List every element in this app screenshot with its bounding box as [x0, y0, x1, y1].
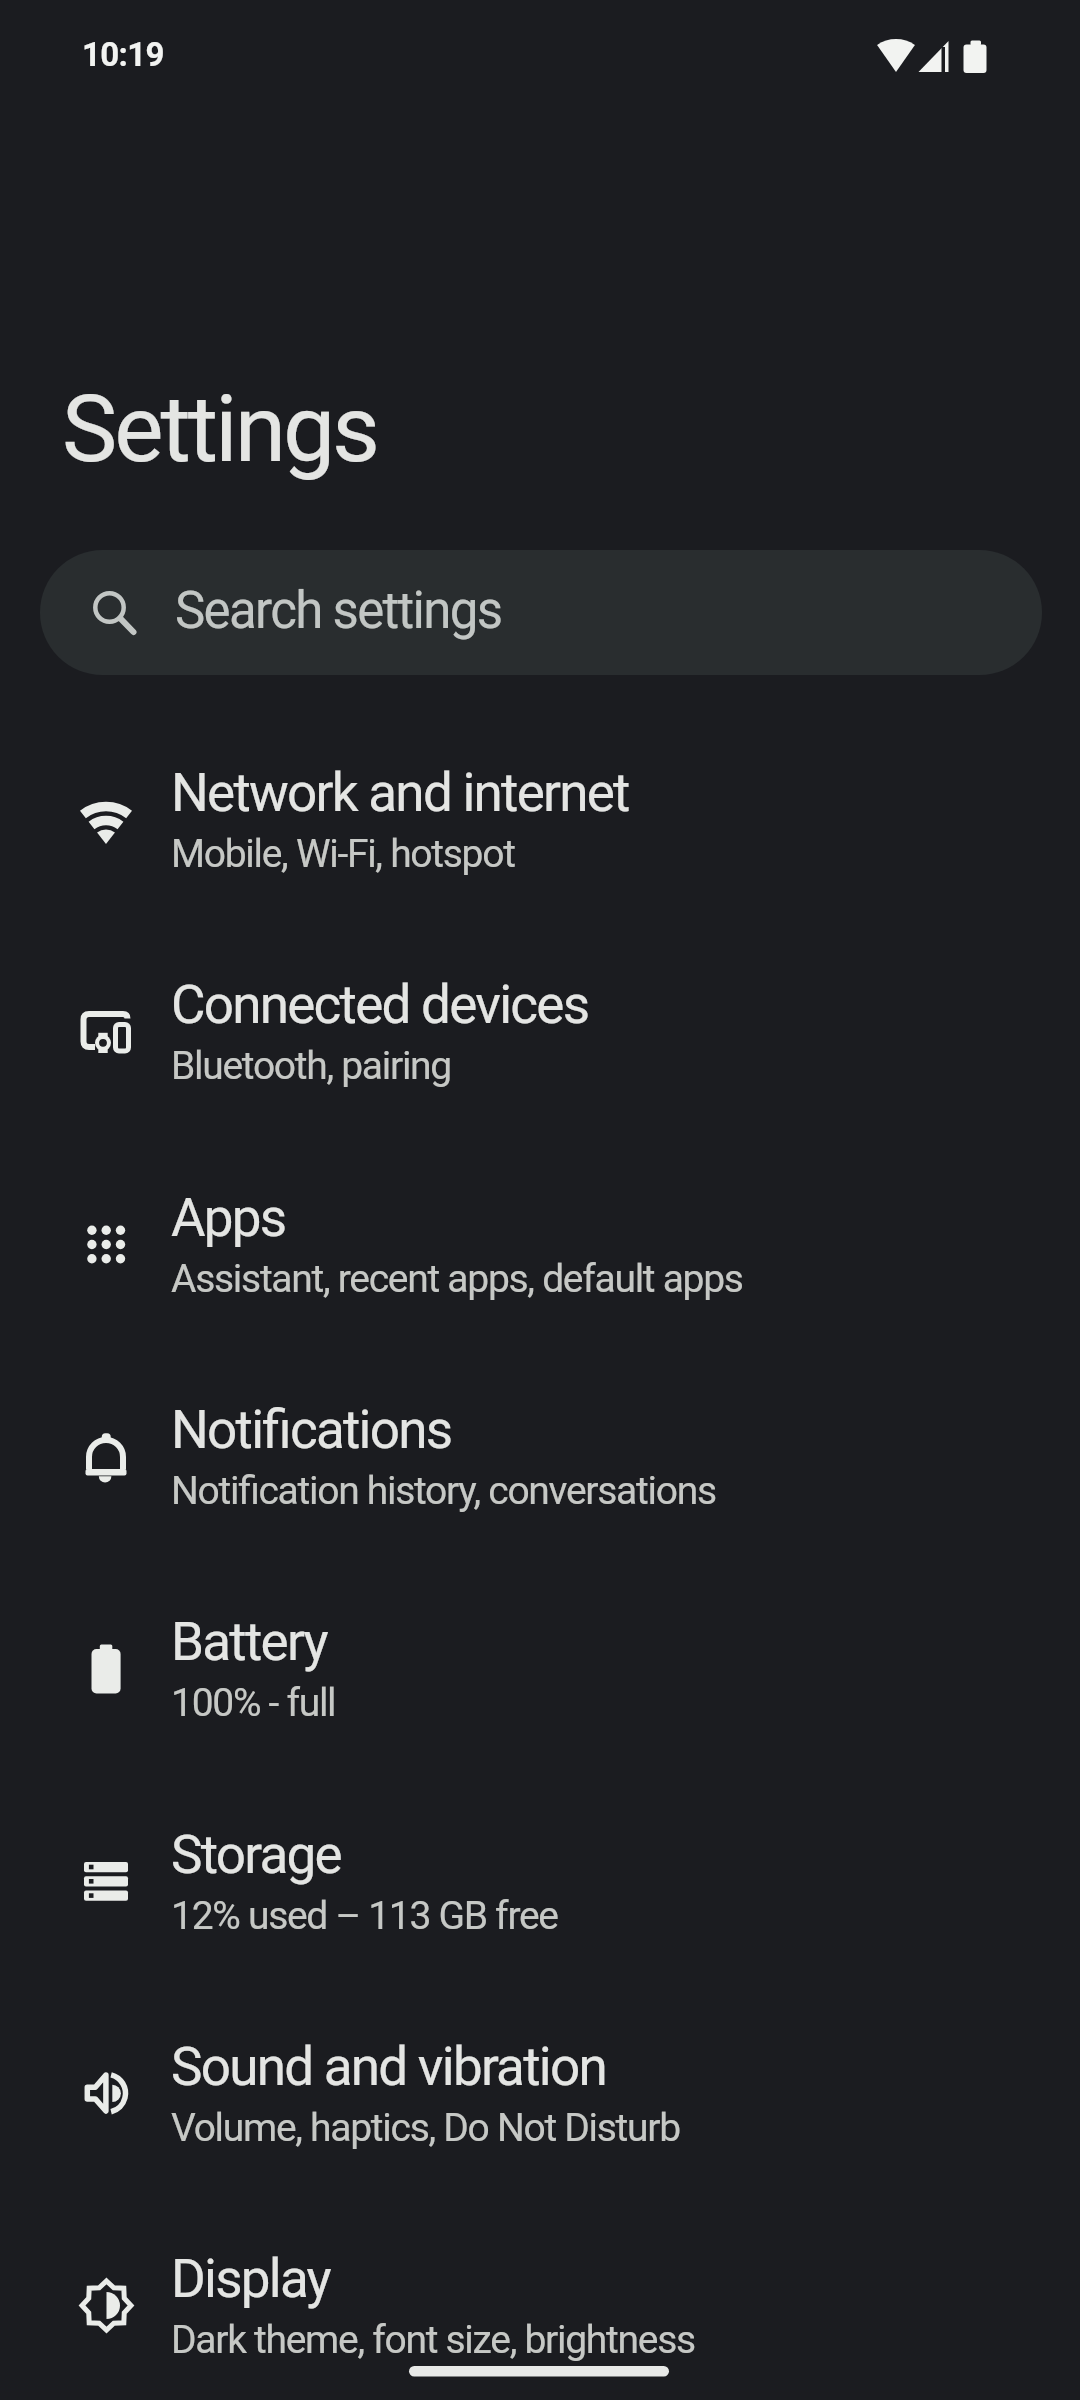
staticText: Network and internet: [171, 762, 629, 824]
staticText: Dark theme, font size, brightness: [171, 2317, 695, 2363]
button[interactable]: Battery: [0, 1563, 1080, 1775]
staticText: Storage: [171, 1824, 341, 1886]
staticText: Sound and vibration: [171, 2036, 606, 2098]
button[interactable]: Notifications: [0, 1351, 1080, 1563]
button[interactable]: Sound and vibration: [0, 1988, 1080, 2200]
staticText: Notification history, conversations: [171, 1468, 716, 1514]
staticText: Settings: [62, 375, 378, 484]
staticText: Notifications: [171, 1399, 452, 1461]
staticText: Display: [171, 2248, 330, 2310]
button[interactable]: Apps: [0, 1139, 1080, 1351]
button[interactable]: Connected devices: [0, 926, 1080, 1138]
staticText: Apps: [171, 1187, 286, 1249]
staticText: Connected devices: [171, 974, 589, 1036]
button[interactable]: Storage: [0, 1776, 1080, 1988]
staticText: 100% - full: [171, 1680, 336, 1726]
staticText: 12% used – 113 GB free: [171, 1893, 558, 1939]
staticText: Assistant, recent apps, default apps: [171, 1256, 743, 1302]
staticText: Mobile, Wi-Fi, hotspot: [171, 831, 515, 877]
staticText: Bluetooth, pairing: [171, 1043, 451, 1089]
staticText: Search settings: [175, 581, 502, 641]
staticText: Battery: [171, 1611, 327, 1673]
staticText: Volume, haptics, Do Not Disturb: [171, 2105, 680, 2151]
staticText: 10:19: [82, 35, 164, 74]
button[interactable]: Search settings: [40, 550, 1042, 675]
button[interactable]: Display: [0, 2200, 1080, 2400]
button[interactable]: Network and internet: [0, 714, 1080, 926]
